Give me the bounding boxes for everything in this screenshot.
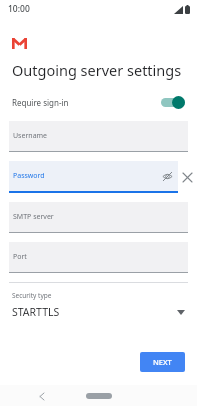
staticText: Port [13,252,27,262]
button[interactable]: Password [9,161,178,193]
button[interactable]: Back [34,388,50,404]
staticText: Username [13,131,48,141]
staticText: Password [13,171,45,181]
button[interactable]: Home [86,393,112,399]
staticText: Security type [12,291,52,300]
staticText: 10:00 [8,3,30,15]
button[interactable]: Port [9,242,188,273]
button[interactable]: NEXT [140,352,185,372]
button[interactable]: Require sign-in toggle [161,95,185,109]
button[interactable]: Clear password [178,162,197,193]
button[interactable]: Username [9,121,188,152]
staticText: SMTP server [13,212,54,222]
staticText: NEXT [153,357,172,367]
staticText: Outgoing server settings [12,60,182,80]
button[interactable]: Show password [160,169,174,183]
button[interactable]: SMTP server [9,202,188,233]
button[interactable]: Security type [0,291,197,319]
staticText: STARTTLS [12,305,60,319]
button[interactable]: Require sign-in [0,92,197,112]
staticText: Require sign-in [12,97,69,108]
